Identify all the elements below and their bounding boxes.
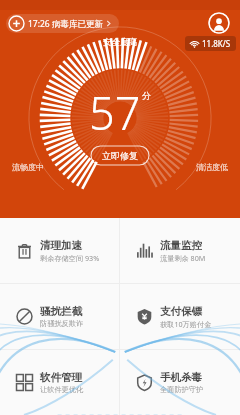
button[interactable]: 流量监控 (120, 218, 240, 283)
staticText: 全面防护守护 (160, 385, 204, 394)
button[interactable]: 软件管理 (0, 350, 119, 415)
button[interactable]: 立即修复 (90, 145, 150, 166)
staticText: 手机杀毒 (160, 371, 202, 384)
staticText: 流量监控 (160, 239, 202, 252)
staticText: 57 (89, 82, 141, 143)
staticText: 防骚扰反欺诈 (40, 319, 84, 328)
staticText: 支付保镖 (160, 305, 202, 318)
staticText: 11.8K/S (202, 38, 231, 49)
staticText: 软件管理 (40, 371, 82, 384)
button[interactable]: 手机杀毒 (120, 350, 240, 415)
staticText: 安全度高 (103, 37, 137, 48)
staticText: 立即修复 (102, 150, 138, 161)
staticText: 获取10万赔付金 (160, 319, 212, 329)
staticText: 流量剩余 80M (160, 253, 206, 263)
staticText: 流畅度中 (12, 162, 44, 172)
staticText: 清洁度低 (196, 162, 228, 172)
button[interactable]: 11.8K/S (185, 36, 236, 51)
button[interactable]: Account (208, 12, 230, 34)
button[interactable]: 骚扰拦截 (0, 284, 119, 349)
staticText: 剩余存储空间 93% (40, 253, 100, 263)
button[interactable]: 17:26 病毒库已更新 (6, 14, 119, 33)
button[interactable]: 清理加速 (0, 218, 119, 283)
button[interactable]: 支付保镖 (120, 284, 240, 349)
staticText: 让软件更优化 (40, 385, 84, 394)
staticText: 清理加速 (40, 239, 82, 252)
staticText: 17:26 病毒库已更新 (28, 18, 103, 30)
staticText: 骚扰拦截 (40, 305, 82, 318)
staticText: 分 (142, 90, 151, 101)
